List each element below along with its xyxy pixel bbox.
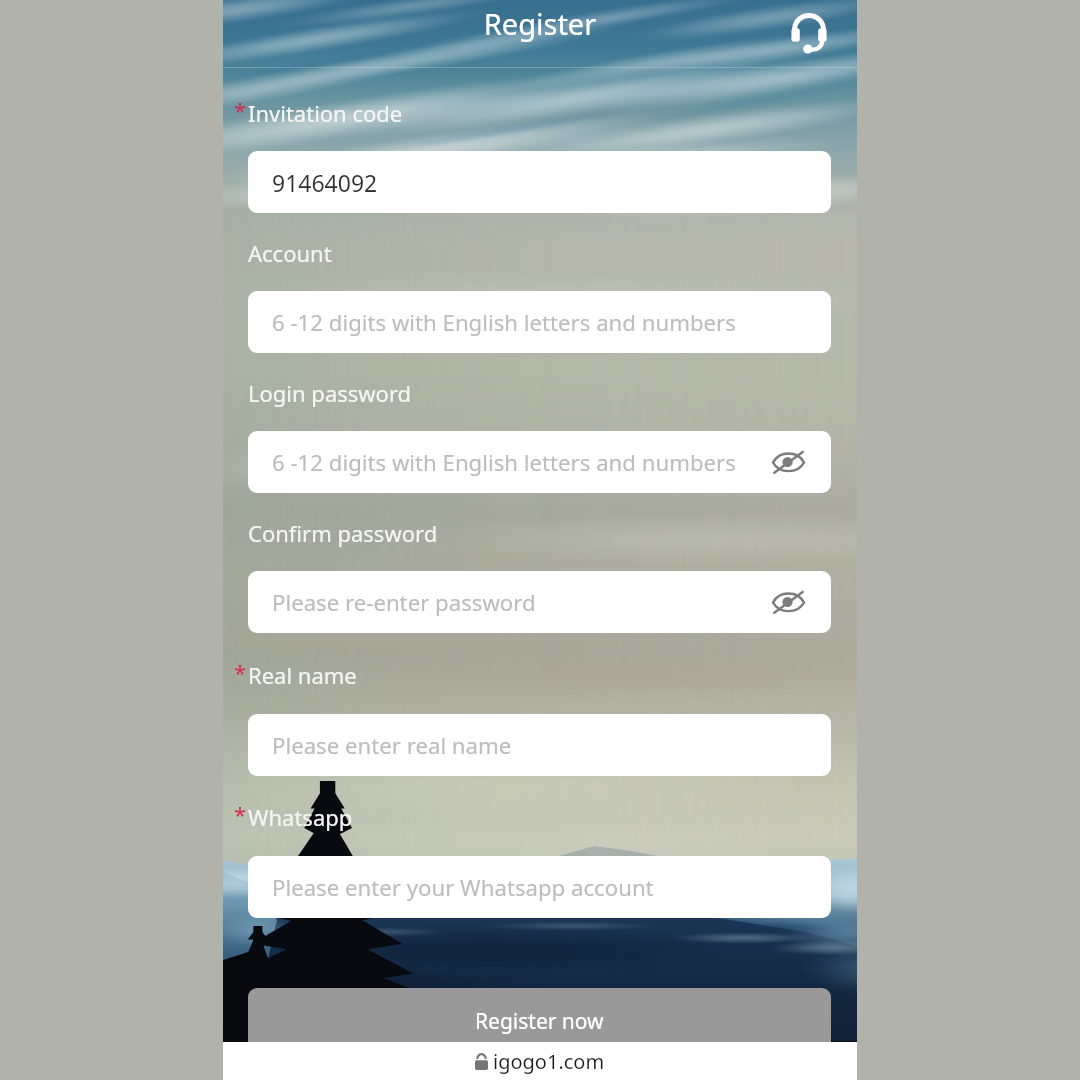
button[interactable]: Show password <box>766 580 810 624</box>
staticText: 6 -12 digits with English letters and nu… <box>272 307 736 337</box>
staticText: Login password <box>248 378 412 408</box>
staticText: Account <box>248 238 332 268</box>
staticText: igogo1.com <box>493 1048 605 1075</box>
staticText: Please enter real name <box>272 730 512 760</box>
button[interactable]: Please re-enter password <box>248 571 831 633</box>
staticText: Register now <box>475 1007 604 1036</box>
button[interactable]: Please enter real name <box>248 714 831 776</box>
button[interactable]: 6 -12 digits with English letters and nu… <box>248 431 831 493</box>
button[interactable]: Register now <box>248 988 831 1054</box>
button[interactable]: Please enter your Whatsapp account <box>248 856 831 918</box>
staticText: Whatsapp <box>248 802 353 832</box>
button[interactable]: Show password <box>766 440 810 484</box>
button[interactable]: Customer service <box>785 9 833 57</box>
staticText: Real name <box>248 660 357 690</box>
staticText: Confirm password <box>248 518 438 548</box>
staticText: Register <box>223 4 857 43</box>
staticText: Invitation code <box>248 98 403 128</box>
staticText: 91464092 <box>272 167 378 198</box>
button[interactable]: 91464092 <box>248 151 831 213</box>
staticText: Please re-enter password <box>272 587 536 617</box>
staticText: 6 -12 digits with English letters and nu… <box>272 447 736 477</box>
button[interactable]: 6 -12 digits with English letters and nu… <box>248 291 831 353</box>
staticText: * <box>234 799 247 829</box>
staticText: * <box>234 95 247 125</box>
staticText: Please enter your Whatsapp account <box>272 872 654 902</box>
staticText: * <box>234 657 247 687</box>
